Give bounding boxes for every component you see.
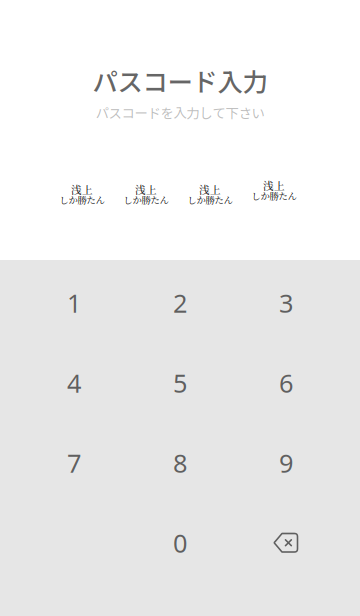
staticText: パスコード入力 <box>92 62 267 99</box>
staticText: 6 <box>279 366 293 400</box>
staticText: しか勝たん <box>187 193 232 206</box>
staticText: 5 <box>173 366 187 400</box>
button[interactable]: 8 <box>127 423 233 503</box>
staticText: 0 <box>173 526 187 560</box>
staticText: 1 <box>67 286 81 320</box>
staticText: パスコードを入力して下さい <box>95 103 264 122</box>
button[interactable]: 2 <box>127 263 233 343</box>
button[interactable]: 3 <box>233 263 339 343</box>
staticText: しか勝たん <box>59 193 104 206</box>
staticText: 浅上 <box>263 178 285 193</box>
staticText: 4 <box>67 366 81 400</box>
button[interactable]: 4 <box>21 343 127 423</box>
button[interactable]: 1 <box>21 263 127 343</box>
staticText: しか勝たん <box>251 189 296 202</box>
staticText: 9 <box>279 446 293 480</box>
button[interactable]: 9 <box>233 423 339 503</box>
staticText: 浅上 <box>199 182 221 197</box>
staticText: 7 <box>67 446 81 480</box>
button[interactable]: 0 <box>127 503 233 583</box>
staticText: しか勝たん <box>123 193 168 206</box>
staticText: 3 <box>279 286 293 320</box>
button[interactable]: 6 <box>233 343 339 423</box>
button[interactable]: Delete <box>233 503 339 583</box>
staticText: 浅上 <box>71 182 93 197</box>
staticText: 2 <box>173 286 187 320</box>
staticText: 8 <box>173 446 187 480</box>
staticText: 浅上 <box>135 182 157 197</box>
button[interactable]: 5 <box>127 343 233 423</box>
button[interactable]: 7 <box>21 423 127 503</box>
